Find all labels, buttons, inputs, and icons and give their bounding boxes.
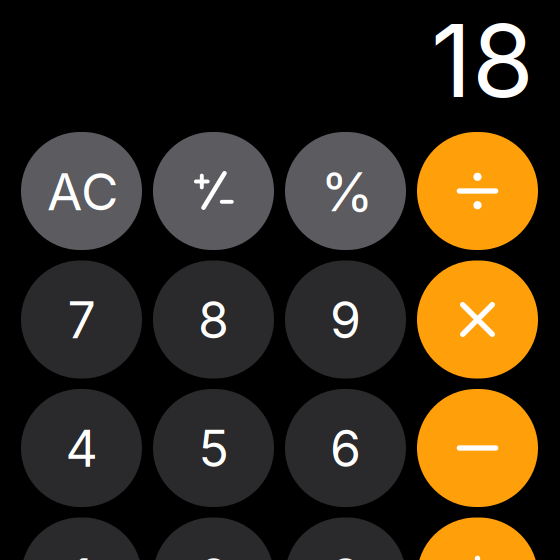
- staticText: 6: [330, 418, 361, 479]
- button[interactable]: 5: [153, 389, 274, 507]
- button[interactable]: 7: [21, 260, 142, 378]
- button[interactable]: 8: [153, 260, 274, 378]
- staticText: 4: [65, 418, 97, 479]
- button[interactable]: 3: [285, 517, 406, 560]
- button[interactable]: Multiply: [417, 260, 538, 378]
- staticText: 2: [198, 547, 228, 560]
- button[interactable]: 1: [21, 517, 142, 560]
- staticText: 5: [198, 418, 228, 479]
- staticText: AC: [47, 160, 118, 222]
- button[interactable]: %: [285, 132, 406, 250]
- staticText: %: [320, 159, 373, 224]
- button[interactable]: 4: [21, 389, 142, 507]
- staticText: 7: [67, 290, 95, 350]
- button[interactable]: AC: [21, 132, 142, 250]
- staticText: 1: [71, 547, 91, 560]
- button[interactable]: Plus Minus: [153, 132, 274, 250]
- button[interactable]: 2: [153, 517, 274, 560]
- button[interactable]: Plus: [417, 517, 538, 560]
- staticText: 8: [198, 290, 229, 350]
- button[interactable]: Divide: [417, 132, 538, 250]
- staticText: 9: [330, 290, 361, 350]
- button[interactable]: 9: [285, 260, 406, 378]
- button[interactable]: Minus: [417, 389, 538, 507]
- staticText: 3: [330, 547, 361, 560]
- staticText: 18: [431, 0, 534, 121]
- button[interactable]: 6: [285, 389, 406, 507]
